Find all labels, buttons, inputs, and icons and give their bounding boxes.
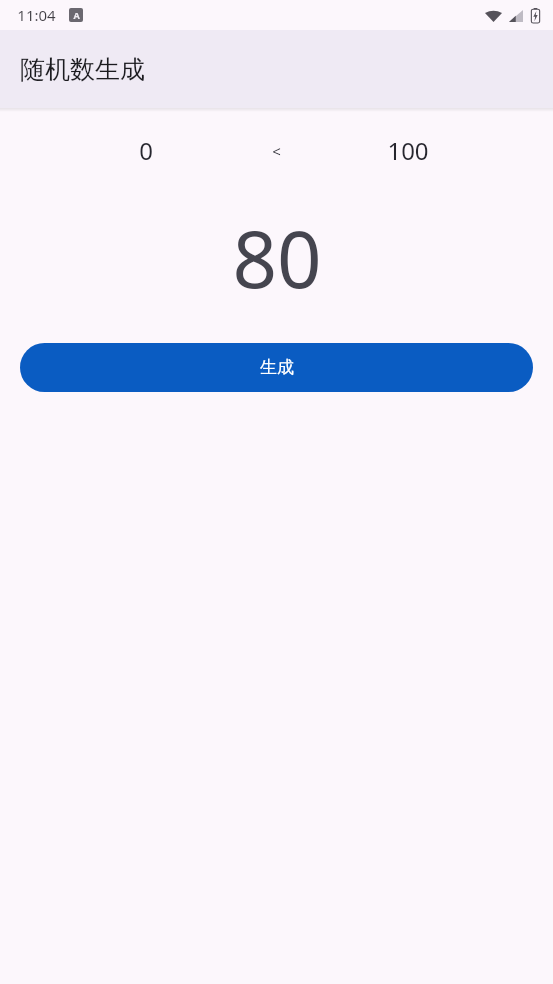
- button[interactable]: <: [211, 141, 342, 161]
- button[interactable]: 生成: [20, 343, 533, 392]
- button[interactable]: 100: [342, 134, 473, 167]
- staticText: 11:04: [17, 5, 56, 25]
- staticText: 生成: [260, 357, 294, 378]
- staticText: 80: [232, 205, 322, 311]
- staticText: A: [73, 9, 80, 21]
- staticText: 100: [387, 134, 429, 167]
- staticText: 0: [139, 134, 153, 167]
- button[interactable]: 0: [80, 134, 211, 167]
- staticText: 随机数生成: [20, 54, 145, 85]
- staticText: <: [272, 141, 281, 161]
